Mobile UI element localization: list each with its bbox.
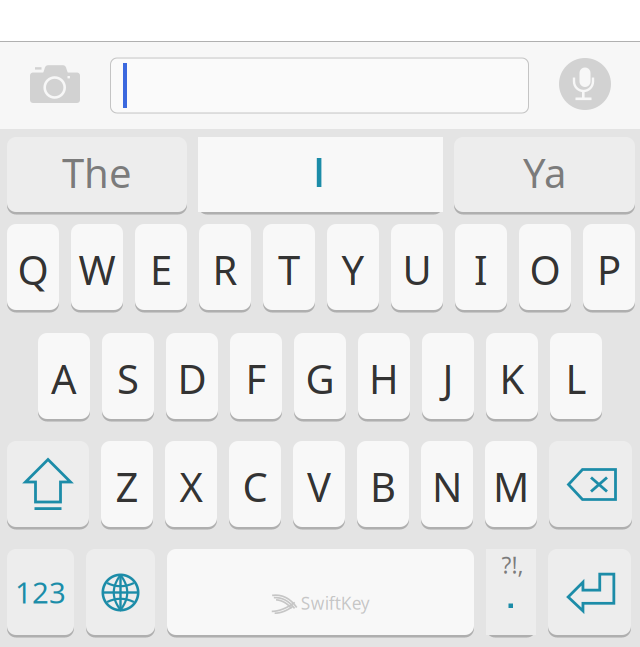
button[interactable]: D bbox=[166, 333, 218, 422]
button[interactable]: 123 bbox=[7, 549, 74, 638]
button[interactable]: O bbox=[519, 224, 571, 313]
staticText: H bbox=[369, 352, 399, 405]
staticText: E bbox=[150, 243, 172, 296]
staticText: The bbox=[62, 146, 132, 199]
staticText: C bbox=[242, 460, 267, 513]
button[interactable]: A bbox=[38, 333, 90, 422]
button[interactable]: G bbox=[294, 333, 346, 422]
button[interactable]: M bbox=[485, 441, 537, 530]
button[interactable]: P bbox=[583, 224, 635, 313]
staticText: W bbox=[78, 243, 115, 296]
button[interactable]: I bbox=[455, 224, 507, 313]
button[interactable]: R bbox=[199, 224, 251, 313]
staticText: Z bbox=[115, 460, 138, 513]
button[interactable]: H bbox=[358, 333, 410, 422]
button[interactable]: Delete bbox=[549, 441, 632, 530]
button[interactable]: Punctuation bbox=[486, 549, 536, 638]
button[interactable]: F bbox=[230, 333, 282, 422]
staticText: ?!, bbox=[501, 550, 523, 580]
button[interactable]: L bbox=[550, 333, 602, 422]
staticText: T bbox=[278, 243, 300, 296]
staticText: Ya bbox=[523, 146, 566, 199]
staticText: M bbox=[493, 460, 529, 513]
button[interactable]: S bbox=[102, 333, 154, 422]
button[interactable]: K bbox=[486, 333, 538, 422]
button[interactable]: C bbox=[229, 441, 281, 530]
staticText: A bbox=[51, 352, 77, 405]
staticText: U bbox=[402, 243, 431, 296]
button[interactable]: E bbox=[135, 224, 187, 313]
button[interactable]: Q bbox=[7, 224, 59, 313]
button[interactable]: W bbox=[71, 224, 123, 313]
button[interactable]: Return bbox=[548, 549, 631, 638]
staticText: B bbox=[370, 460, 396, 513]
staticText: O bbox=[529, 243, 560, 296]
staticText: L bbox=[565, 352, 586, 405]
button[interactable]: Next keyboard bbox=[86, 549, 155, 638]
button[interactable]: U bbox=[391, 224, 443, 313]
button[interactable]: space bbox=[167, 549, 474, 638]
staticText: 123 bbox=[15, 572, 66, 611]
staticText: J bbox=[442, 352, 453, 405]
staticText: G bbox=[305, 352, 334, 405]
button[interactable]: T bbox=[263, 224, 315, 313]
staticText: Y bbox=[341, 243, 364, 296]
button[interactable]: Z bbox=[101, 441, 153, 530]
staticText: SwiftKey bbox=[301, 591, 370, 614]
button[interactable]: Shift bbox=[7, 441, 89, 530]
button[interactable]: X bbox=[165, 441, 217, 530]
button[interactable]: Camera bbox=[0, 42, 100, 129]
button[interactable]: Ya bbox=[454, 137, 635, 215]
button[interactable] bbox=[198, 137, 443, 215]
staticText: F bbox=[245, 352, 266, 405]
button[interactable]: J bbox=[422, 333, 474, 422]
staticText: K bbox=[499, 352, 524, 405]
button[interactable]: B bbox=[357, 441, 409, 530]
staticText: D bbox=[177, 352, 206, 405]
staticText: N bbox=[432, 460, 462, 513]
staticText: X bbox=[179, 460, 202, 513]
button[interactable]: The bbox=[7, 137, 187, 215]
button[interactable]: V bbox=[293, 441, 345, 530]
staticText: P bbox=[597, 243, 621, 296]
button[interactable]: Dictate bbox=[559, 58, 611, 110]
staticText: R bbox=[212, 243, 237, 296]
staticText: I bbox=[474, 243, 488, 296]
button[interactable]: N bbox=[421, 441, 473, 530]
staticText: S bbox=[117, 352, 139, 405]
staticText: V bbox=[307, 460, 331, 513]
staticText: Q bbox=[17, 243, 48, 296]
button[interactable]: Y bbox=[327, 224, 379, 313]
